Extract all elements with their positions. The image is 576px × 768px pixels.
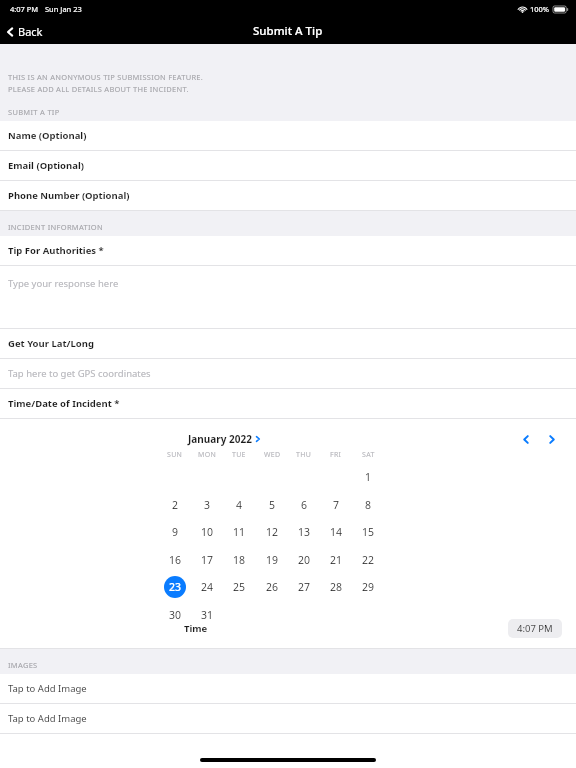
button[interactable]: Name (Optional) bbox=[0, 121, 576, 151]
staticText: 23 bbox=[169, 580, 182, 594]
staticText: Tap here to get GPS coordinates bbox=[8, 367, 151, 380]
button[interactable]: 14 bbox=[323, 520, 349, 544]
staticText: 8 bbox=[365, 498, 372, 512]
button[interactable]: January 2022 bbox=[188, 432, 261, 446]
button[interactable]: 9 bbox=[162, 520, 188, 544]
button[interactable]: Previous month bbox=[516, 429, 536, 449]
button[interactable]: 1 bbox=[355, 465, 381, 489]
button[interactable]: 15 bbox=[355, 520, 381, 544]
staticText: 16 bbox=[169, 553, 182, 567]
button[interactable]: 26 bbox=[259, 575, 285, 599]
staticText: Type your response here bbox=[8, 277, 119, 290]
staticText: 21 bbox=[330, 553, 343, 567]
staticText: 30 bbox=[169, 608, 182, 622]
button[interactable]: 12 bbox=[259, 520, 285, 544]
button[interactable]: 3 bbox=[194, 493, 220, 517]
staticText: 29 bbox=[362, 580, 375, 594]
staticText: MON bbox=[198, 450, 217, 460]
button[interactable]: Email (Optional) bbox=[0, 151, 576, 181]
button[interactable]: 2 bbox=[162, 493, 188, 517]
staticText: 28 bbox=[330, 580, 343, 594]
staticText: 4:07 PM bbox=[517, 622, 553, 635]
button[interactable]: 31 bbox=[194, 603, 220, 627]
staticText: Get Your Lat/Long bbox=[8, 337, 94, 350]
staticText: Tap to Add Image bbox=[8, 712, 87, 725]
button[interactable]: 24 bbox=[194, 575, 220, 599]
staticText: SUBMIT A TIP bbox=[8, 107, 60, 117]
staticText: IMAGES bbox=[8, 660, 38, 670]
staticText: 5 bbox=[269, 498, 276, 512]
button[interactable]: Tip For Authorities * bbox=[0, 236, 576, 266]
staticText: Time/Date of Incident * bbox=[8, 397, 120, 410]
button[interactable]: 4:07 PM bbox=[508, 619, 562, 638]
button[interactable]: 10 bbox=[194, 520, 220, 544]
staticText: 14 bbox=[330, 525, 343, 539]
staticText: SUN bbox=[167, 450, 183, 460]
button[interactable]: 6 bbox=[291, 493, 317, 517]
staticText: FRI bbox=[330, 450, 342, 460]
button[interactable]: 18 bbox=[226, 548, 252, 572]
staticText: Phone Number (Optional) bbox=[8, 189, 130, 202]
button[interactable]: 27 bbox=[291, 575, 317, 599]
button[interactable]: 11 bbox=[226, 520, 252, 544]
button[interactable]: Type your response here bbox=[0, 266, 576, 329]
button[interactable]: Phone Number (Optional) bbox=[0, 181, 576, 211]
staticText: 31 bbox=[201, 608, 214, 622]
staticText: 10 bbox=[201, 525, 214, 539]
staticText: 25 bbox=[233, 580, 246, 594]
button[interactable]: 20 bbox=[291, 548, 317, 572]
button[interactable]: 25 bbox=[226, 575, 252, 599]
button[interactable]: 29 bbox=[355, 575, 381, 599]
staticText: Email (Optional) bbox=[8, 159, 84, 172]
staticText: THIS IS AN ANONYMOUS TIP SUBMISSION FEAT… bbox=[8, 72, 204, 82]
staticText: 20 bbox=[298, 553, 311, 567]
staticText: WED bbox=[264, 450, 281, 460]
button[interactable]: Time/Date of Incident * bbox=[0, 389, 576, 419]
staticText: 100% bbox=[530, 4, 550, 14]
staticText: SAT bbox=[362, 450, 375, 460]
button[interactable]: Tap to Add Image bbox=[0, 674, 576, 704]
staticText: 24 bbox=[201, 580, 214, 594]
staticText: PLEASE ADD ALL DETAILS ABOUT THE INCIDEN… bbox=[8, 84, 189, 94]
staticText: Back bbox=[18, 24, 43, 39]
button[interactable]: 22 bbox=[355, 548, 381, 572]
staticText: 12 bbox=[266, 525, 279, 539]
staticText: THU bbox=[296, 450, 312, 460]
staticText: TUE bbox=[232, 450, 246, 460]
staticText: 11 bbox=[233, 525, 246, 539]
staticText: 13 bbox=[298, 525, 311, 539]
button[interactable]: 21 bbox=[323, 548, 349, 572]
button[interactable]: 16 bbox=[162, 548, 188, 572]
button[interactable]: 8 bbox=[355, 493, 381, 517]
button[interactable]: 7 bbox=[323, 493, 349, 517]
button[interactable]: 23 bbox=[162, 575, 188, 599]
button[interactable]: Tap to Add Image bbox=[0, 704, 576, 734]
staticText: Sun Jan 23 bbox=[45, 4, 82, 14]
button[interactable]: 19 bbox=[259, 548, 285, 572]
button[interactable]: 17 bbox=[194, 548, 220, 572]
button[interactable]: 5 bbox=[259, 493, 285, 517]
staticText: 17 bbox=[201, 553, 214, 567]
staticText: Tap to Add Image bbox=[8, 682, 87, 695]
staticText: 19 bbox=[266, 553, 279, 567]
staticText: INCIDENT INFORMATION bbox=[8, 222, 103, 232]
staticText: 3 bbox=[204, 498, 211, 512]
staticText: 18 bbox=[233, 553, 246, 567]
staticText: 4:07 PM bbox=[10, 4, 39, 14]
staticText: Name (Optional) bbox=[8, 129, 87, 142]
button[interactable]: 30 bbox=[162, 603, 188, 627]
button[interactable]: Get Your Lat/Long bbox=[0, 329, 576, 359]
staticText: 2 bbox=[172, 498, 179, 512]
button[interactable]: 4 bbox=[226, 493, 252, 517]
staticText: 6 bbox=[301, 498, 308, 512]
button[interactable]: Next month bbox=[542, 429, 562, 449]
button[interactable]: Tap here to get GPS coordinates bbox=[0, 359, 576, 389]
button[interactable]: 13 bbox=[291, 520, 317, 544]
staticText: 7 bbox=[333, 498, 340, 512]
staticText: Tip For Authorities * bbox=[8, 244, 104, 257]
staticText: 27 bbox=[298, 580, 311, 594]
staticText: 9 bbox=[172, 525, 179, 539]
button[interactable]: Back bbox=[5, 24, 43, 39]
staticText: 22 bbox=[362, 553, 375, 567]
button[interactable]: 28 bbox=[323, 575, 349, 599]
